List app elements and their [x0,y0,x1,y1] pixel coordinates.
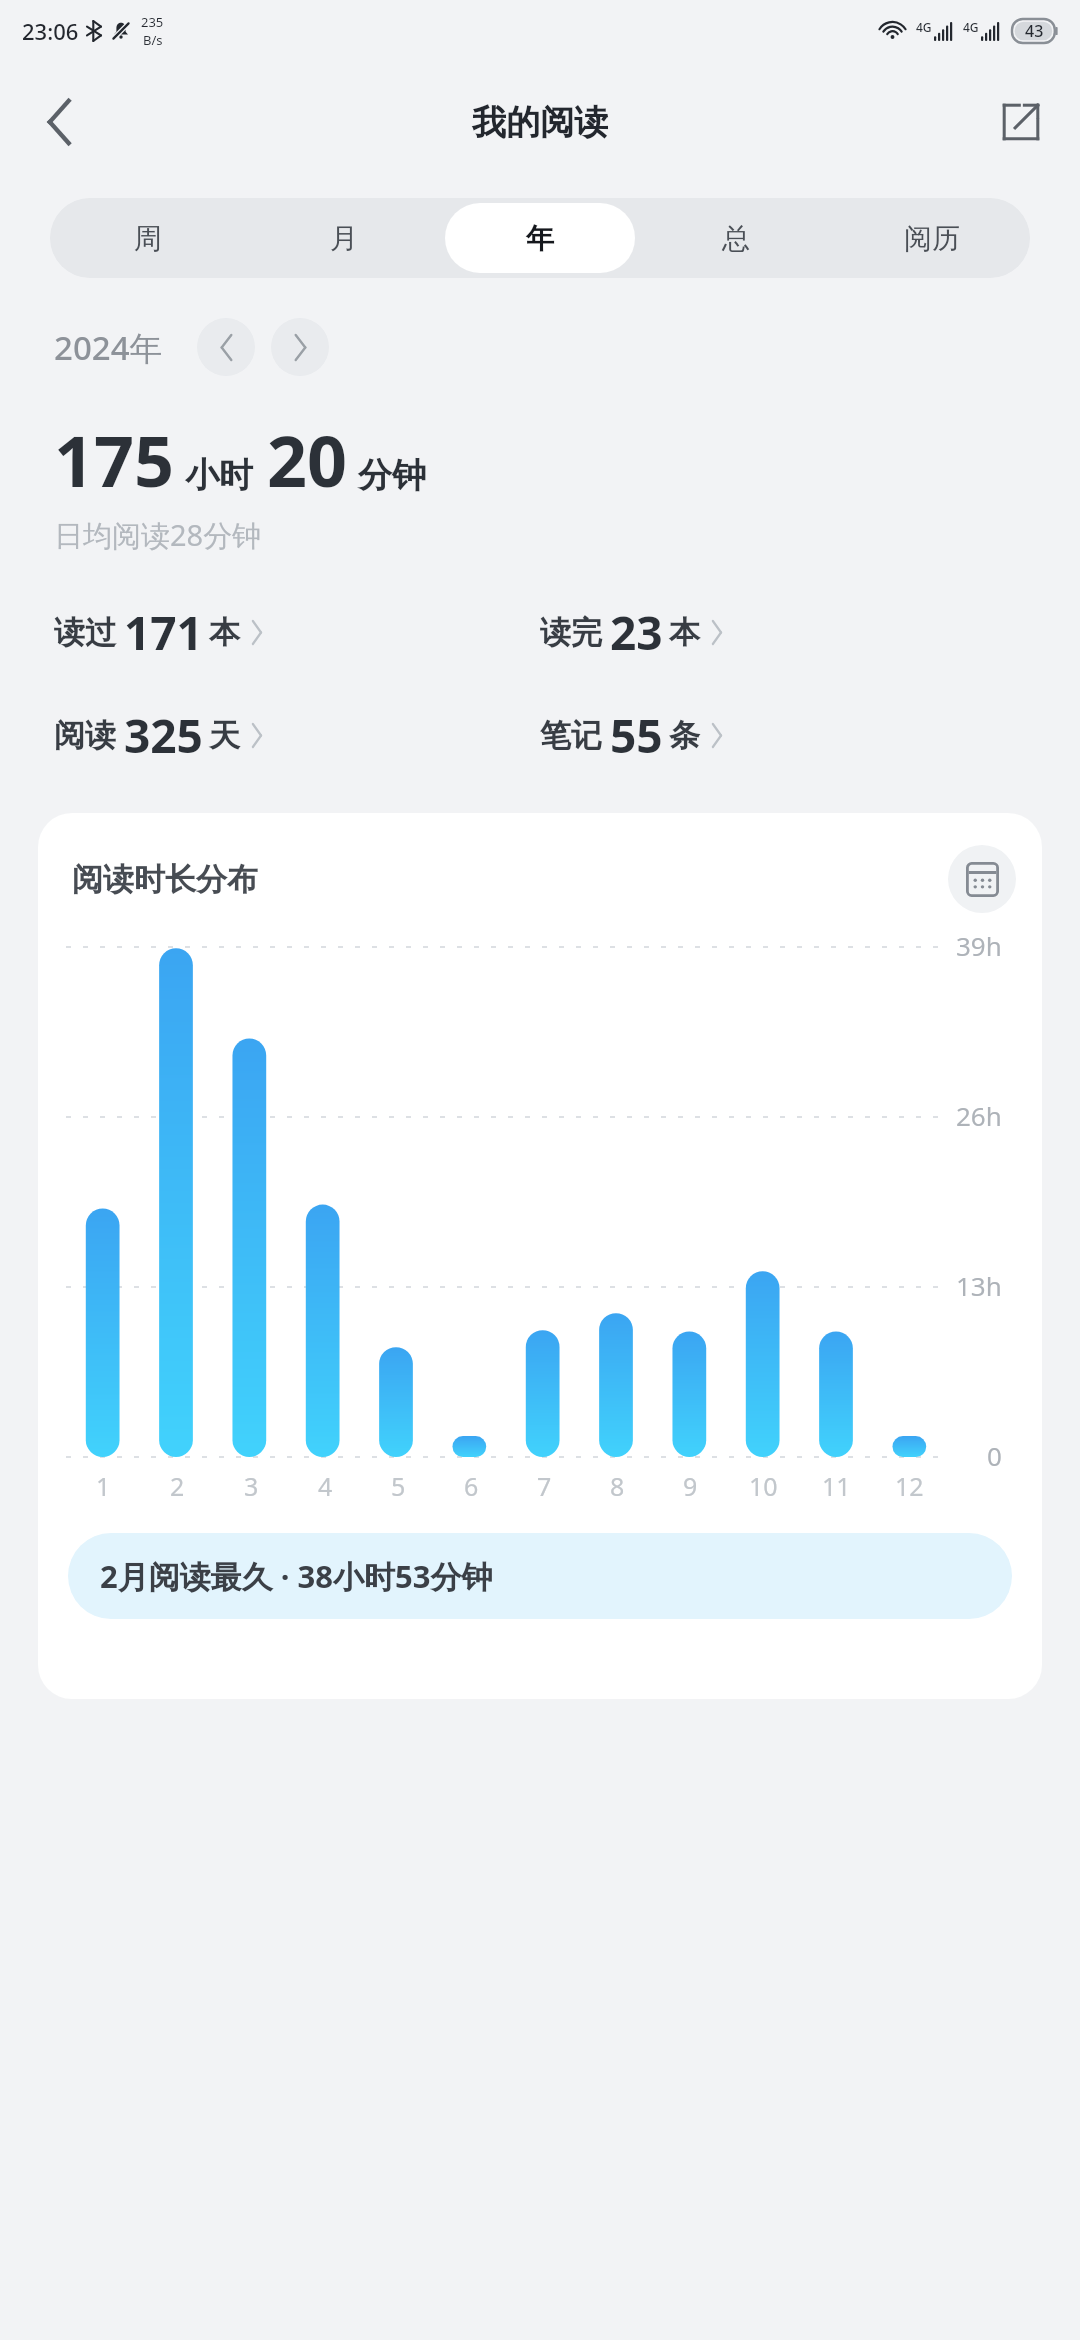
staticText: 26h [956,1098,1002,1133]
staticText: 2 [170,1469,185,1503]
staticText: 171 [124,601,203,664]
staticText: 本 [669,613,700,652]
staticText: 本 [209,613,240,652]
button[interactable]: 读完 [540,595,1026,670]
button[interactable]: 年 [445,203,635,273]
staticText: 阅读时长分布 [72,860,258,899]
button[interactable]: Previous year [197,318,255,376]
button[interactable]: Calendar [948,845,1016,913]
staticText: 9 [683,1469,698,1503]
staticText: 周 [134,221,162,256]
staticText: 阅读 [54,716,116,755]
staticText: 阅历 [904,221,960,256]
staticText: 8 [610,1469,625,1503]
staticText: 3 [244,1469,259,1503]
staticText: B/s [143,31,163,49]
staticText: 43 [1025,20,1044,42]
staticText: 5 [391,1469,406,1503]
staticText: 175 [54,412,175,507]
staticText: 小时 [185,454,253,497]
staticText: 23:06 [22,16,79,46]
staticText: 日均阅读28分钟 [54,515,262,555]
staticText: 325 [124,704,203,767]
button[interactable]: Share [980,81,1062,163]
staticText: 月 [330,221,358,256]
button[interactable]: 2月阅读最久 · 38小时53分钟 [68,1533,1012,1619]
staticText: 12 [895,1469,924,1503]
staticText: 我的阅读 [472,101,608,144]
staticText: 1 [96,1469,111,1503]
staticText: 年 [526,221,554,256]
staticText: 读完 [540,613,602,652]
staticText: 读过 [54,613,116,652]
staticText: 2月阅读最久 · 38小时53分钟 [100,1555,493,1597]
button[interactable]: 阅历 [837,203,1027,273]
staticText: 天 [209,716,240,755]
staticText: 分钟 [358,454,426,497]
button[interactable]: 总 [641,203,831,273]
staticText: 4G [916,19,932,35]
staticText: 总 [722,221,750,256]
staticText: 39h [956,928,1002,963]
staticText: 4 [318,1469,333,1503]
button[interactable]: 笔记 [540,698,1026,773]
button[interactable]: 阅读 [54,698,540,773]
staticText: 20 [267,412,348,507]
button[interactable]: 读过 [54,595,540,670]
staticText: 13h [956,1268,1002,1303]
staticText: 条 [669,716,700,755]
button[interactable]: 月 [249,203,439,273]
staticText: 6 [464,1469,479,1503]
staticText: 笔记 [540,716,602,755]
staticText: 10 [749,1469,778,1503]
staticText: 4G [963,19,979,35]
staticText: 0 [987,1438,1002,1473]
button[interactable]: Back [18,81,100,163]
button[interactable]: 周 [53,203,243,273]
staticText: 23 [610,601,663,664]
staticText: 2024年 [54,325,163,370]
staticText: 55 [610,704,663,767]
staticText: 11 [822,1469,851,1503]
button[interactable]: Next year [271,318,329,376]
staticText: 235 [141,13,164,31]
staticText: 7 [537,1469,552,1503]
